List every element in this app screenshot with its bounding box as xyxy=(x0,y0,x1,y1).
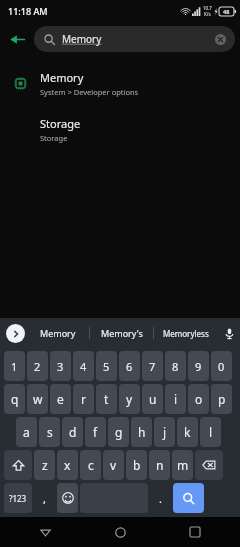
button[interactable]: r xyxy=(73,384,94,414)
button[interactable]: l xyxy=(200,417,221,447)
button[interactable]: Search xyxy=(173,483,204,513)
staticText: Memory xyxy=(62,32,102,46)
button[interactable]: 2 xyxy=(27,351,48,381)
button[interactable]: 3 xyxy=(50,351,71,381)
button[interactable]: Memory xyxy=(25,318,90,348)
button[interactable]: 9 xyxy=(188,351,209,381)
button[interactable]: a xyxy=(16,417,37,447)
button[interactable]: p xyxy=(211,384,232,414)
button[interactable]: Memoryless xyxy=(154,318,218,348)
staticText: s xyxy=(47,424,53,440)
button[interactable]: k xyxy=(177,417,198,447)
staticText: Memoryless xyxy=(163,328,209,339)
staticText: 3 xyxy=(57,359,64,374)
staticText: h xyxy=(138,424,146,440)
staticText: 2 xyxy=(34,359,41,374)
button[interactable]: x xyxy=(57,450,78,480)
button[interactable]: v xyxy=(103,450,124,480)
button[interactable]: 8 xyxy=(165,351,186,381)
staticText: 11:18 AM xyxy=(8,5,48,17)
staticText: i xyxy=(174,391,178,407)
staticText: d xyxy=(69,424,77,440)
button[interactable]: u xyxy=(142,384,163,414)
staticText: t xyxy=(104,391,109,407)
staticText: p xyxy=(218,391,226,407)
staticText: K/s xyxy=(204,11,211,17)
button[interactable]: m xyxy=(172,450,193,480)
staticText: 1 xyxy=(11,359,18,374)
staticText: n xyxy=(156,457,164,473)
button[interactable]: Home xyxy=(105,517,135,547)
staticText: 7 xyxy=(149,359,156,374)
staticText: Memory xyxy=(40,70,84,85)
staticText: Storage xyxy=(40,116,81,131)
button[interactable]: Voice input xyxy=(218,318,240,348)
staticText: u xyxy=(149,391,157,407)
button[interactable]: Memory xyxy=(0,61,240,105)
button[interactable]: t xyxy=(96,384,117,414)
staticText: . xyxy=(159,491,162,506)
button[interactable]: 1 xyxy=(4,351,25,381)
button[interactable]: 4 xyxy=(73,351,94,381)
button[interactable]: , xyxy=(34,483,55,513)
staticText: g xyxy=(115,424,123,440)
button[interactable]: g xyxy=(108,417,129,447)
button[interactable]: ?123 xyxy=(4,483,32,513)
staticText: m xyxy=(177,457,189,473)
staticText: Memory xyxy=(40,327,76,339)
staticText: k xyxy=(184,424,191,440)
staticText: 9 xyxy=(195,359,202,374)
staticText: ?123 xyxy=(9,493,27,504)
staticText: j xyxy=(163,424,167,440)
button[interactable]: b xyxy=(126,450,147,480)
button[interactable]: e xyxy=(50,384,71,414)
button[interactable]: Back xyxy=(0,22,34,56)
button[interactable]: d xyxy=(62,417,83,447)
button[interactable]: 7 xyxy=(142,351,163,381)
button[interactable]: Shift xyxy=(4,450,32,480)
button[interactable]: Backspace xyxy=(195,450,223,480)
button[interactable]: c xyxy=(80,450,101,480)
staticText: r xyxy=(81,391,86,407)
staticText: z xyxy=(42,457,48,473)
staticText: 8 xyxy=(172,359,179,374)
button[interactable]: h xyxy=(131,417,152,447)
button[interactable]: o xyxy=(188,384,209,414)
button[interactable]: More suggestions xyxy=(6,324,25,343)
button[interactable]: z xyxy=(34,450,55,480)
staticText: 6 xyxy=(126,359,133,374)
button[interactable]: Memory's xyxy=(90,318,154,348)
button[interactable]: w xyxy=(27,384,48,414)
staticText: w xyxy=(33,391,43,407)
button[interactable]: f xyxy=(85,417,106,447)
button[interactable]: Memory xyxy=(34,26,235,52)
button[interactable]: Back xyxy=(30,517,60,547)
staticText: x xyxy=(64,457,71,473)
button[interactable]: Recent apps xyxy=(180,517,210,547)
button[interactable]: i xyxy=(165,384,186,414)
button[interactable]: . xyxy=(150,483,171,513)
staticText: c xyxy=(88,457,94,473)
staticText: 10.7 xyxy=(203,5,212,11)
button[interactable]: y xyxy=(119,384,140,414)
staticText: y xyxy=(126,391,133,407)
button[interactable]: j xyxy=(154,417,175,447)
button[interactable]: 0 xyxy=(211,351,232,381)
button[interactable]: q xyxy=(4,384,25,414)
button[interactable]: s xyxy=(39,417,60,447)
button[interactable]: 5 xyxy=(96,351,117,381)
staticText: v xyxy=(110,457,117,473)
button[interactable]: n xyxy=(149,450,170,480)
staticText: System > Developer options xyxy=(40,87,139,97)
staticText: b xyxy=(133,457,141,473)
staticText: l xyxy=(209,424,213,440)
button[interactable]: Storage xyxy=(0,107,240,151)
staticText: 0 xyxy=(218,359,225,374)
staticText: o xyxy=(195,391,203,407)
staticText: 4 xyxy=(80,359,87,374)
button[interactable]: 6 xyxy=(119,351,140,381)
staticText: Storage xyxy=(40,133,68,143)
button[interactable]: Clear search xyxy=(209,28,231,50)
button[interactable]: Emoji xyxy=(57,483,78,513)
